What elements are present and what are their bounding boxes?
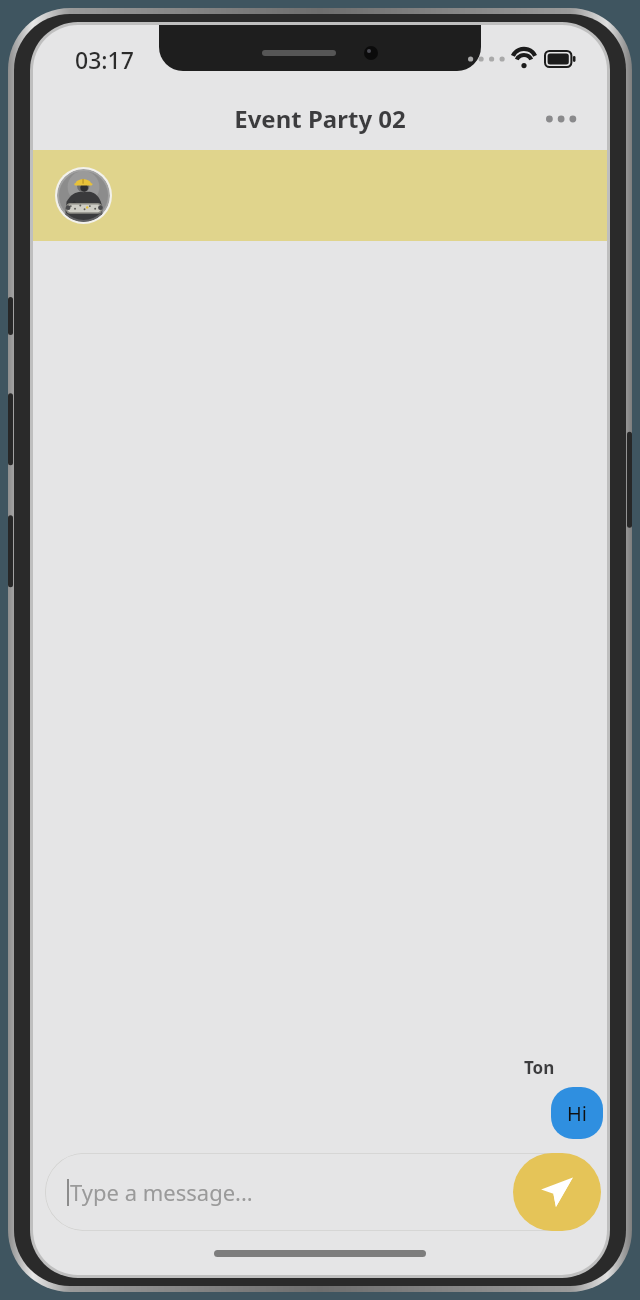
staticText: Hi: [567, 1100, 587, 1127]
button[interactable]: [33, 150, 607, 241]
staticText: Type a message...: [70, 1177, 253, 1207]
staticText: Event Party 02: [234, 102, 406, 135]
button[interactable]: Hi: [551, 1087, 603, 1139]
button[interactable]: More options: [537, 93, 589, 145]
staticText: Ton: [524, 1056, 555, 1079]
button[interactable]: Send: [513, 1153, 601, 1231]
staticText: 03:17: [75, 44, 134, 75]
button[interactable]: Type a message...: [45, 1153, 595, 1231]
